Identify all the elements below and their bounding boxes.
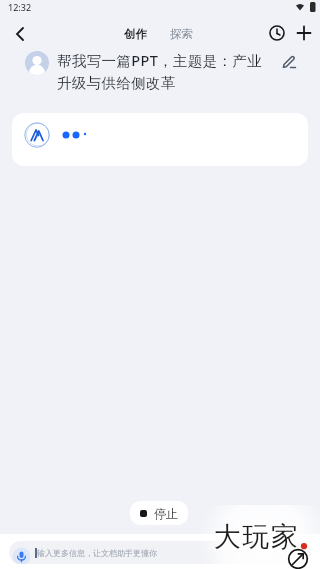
staticText: 停止 bbox=[154, 506, 178, 521]
staticText: 输入更多信息，让文档助手更懂你 bbox=[37, 548, 157, 558]
button[interactable] bbox=[293, 22, 315, 44]
button[interactable] bbox=[12, 113, 308, 166]
button[interactable]: 输入更多信息，让文档助手更懂你 bbox=[9, 541, 311, 564]
button[interactable]: 停止 bbox=[130, 501, 188, 525]
staticText: 探索 bbox=[170, 27, 193, 41]
button[interactable]: 探索 bbox=[170, 27, 193, 41]
staticText: 12:32 bbox=[8, 1, 32, 13]
button[interactable] bbox=[8, 22, 32, 46]
button[interactable] bbox=[266, 22, 288, 44]
button[interactable]: 创作 bbox=[124, 27, 147, 41]
staticText: 大玩家 bbox=[214, 520, 300, 554]
staticText: 创作 bbox=[124, 27, 147, 41]
button[interactable] bbox=[281, 53, 299, 71]
staticText: 帮我写一篇PPT，主题是：产业 升级与供给侧改革 bbox=[57, 50, 263, 92]
